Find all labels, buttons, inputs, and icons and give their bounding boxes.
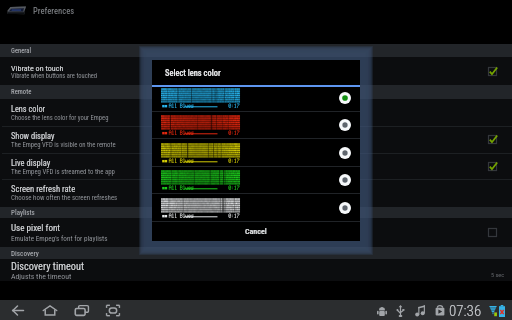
staticText: Adjusts the timeout: [11, 272, 72, 281]
button[interactable]: Screen refresh rate: [0, 179, 512, 207]
staticText: Lens color: [11, 104, 46, 114]
button[interactable]: Wi-Fi: [484, 300, 502, 320]
button[interactable]: Vibrate on touch: [0, 57, 512, 85]
staticText: Vibrate when buttons are touched: [11, 72, 98, 80]
staticText: 07:36: [449, 302, 482, 320]
staticText: Choose how often the screen refreshes: [11, 194, 118, 202]
staticText: Playlists: [11, 209, 35, 217]
button[interactable]: [152, 85, 360, 112]
staticText: General: [11, 47, 32, 55]
staticText: Vibrate on touch: [11, 63, 64, 72]
staticText: Remote: [11, 88, 32, 96]
button[interactable]: Lens color: [0, 99, 512, 126]
button[interactable]: Recent apps: [70, 300, 94, 320]
button[interactable]: [152, 112, 360, 139]
staticText: Select lens color: [165, 68, 221, 78]
staticText: The Empeg VFD is streamed to the app: [11, 168, 115, 176]
staticText: Live display: [11, 158, 51, 168]
button[interactable]: [152, 140, 360, 167]
button[interactable]: Discovery timeout: [0, 258, 512, 282]
button[interactable]: [152, 167, 360, 194]
button[interactable]: Show display: [0, 126, 512, 153]
button[interactable]: Home: [38, 300, 62, 320]
staticText: 5 sec: [491, 271, 505, 278]
button[interactable]: [152, 195, 360, 222]
button[interactable]: USB: [391, 300, 410, 320]
button[interactable]: Up: [7, 5, 75, 15]
button[interactable]: Android: [372, 300, 392, 320]
button[interactable]: Screenshot: [101, 300, 125, 320]
button[interactable]: Live display: [0, 153, 512, 180]
staticText: Discovery: [11, 249, 39, 257]
staticText: Use pixel font: [11, 223, 61, 234]
button[interactable]: Back: [6, 300, 29, 320]
staticText: Screen refresh rate: [11, 184, 76, 194]
staticText: Cancel: [245, 227, 267, 236]
staticText: The Empeg VFD is visible on the remote: [11, 141, 116, 149]
staticText: Choose the lens color for your Empeg: [11, 114, 109, 122]
button[interactable]: Battery: [494, 300, 510, 320]
button[interactable]: Music: [410, 300, 431, 320]
staticText: Discovery timeout: [11, 260, 85, 272]
button[interactable]: Cancel: [152, 222, 360, 241]
staticText: Preferences: [33, 6, 75, 16]
button[interactable]: Play Store: [430, 300, 450, 320]
staticText: Emulate Empeg's font for playlists: [11, 234, 108, 242]
staticText: Show display: [11, 131, 55, 141]
button[interactable]: Use pixel font: [0, 218, 512, 247]
